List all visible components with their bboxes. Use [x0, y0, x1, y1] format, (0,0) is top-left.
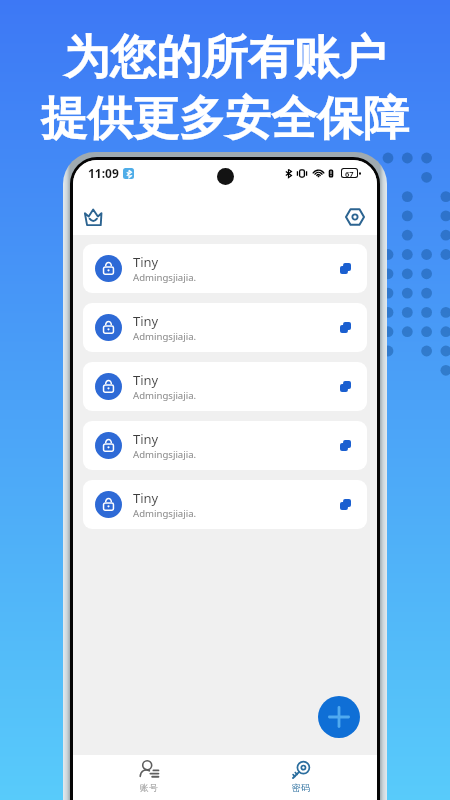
staticText: 账号 [140, 782, 158, 793]
button[interactable]: Premium [75, 199, 111, 235]
staticText: Tiny [133, 312, 159, 330]
button[interactable]: Tiny [83, 421, 367, 470]
staticText: Tiny [133, 489, 159, 507]
button[interactable]: Copy password [335, 258, 355, 278]
button[interactable]: Tiny [83, 244, 367, 293]
staticText: Tiny [133, 371, 159, 389]
button[interactable]: Copy password [335, 435, 355, 455]
staticText: 67 [345, 169, 354, 177]
staticText: Admingsjiajia. [133, 507, 197, 520]
staticText: Admingsjiajia. [133, 389, 197, 402]
button[interactable]: 账号 [73, 755, 225, 800]
button[interactable]: Tiny [83, 303, 367, 352]
staticText: Admingsjiajia. [133, 330, 197, 343]
button[interactable]: Copy password [335, 376, 355, 396]
staticText: 为您的所有账户 [64, 29, 386, 87]
button[interactable]: Copy password [335, 494, 355, 514]
staticText: Tiny [133, 253, 159, 271]
button[interactable]: 密码 [225, 755, 377, 800]
staticText: 提供更多安全保障 [41, 90, 409, 148]
button[interactable]: Add account [318, 696, 360, 738]
staticText: Admingsjiajia. [133, 271, 197, 284]
button[interactable]: Tiny [83, 362, 367, 411]
staticText: 密码 [292, 782, 310, 793]
staticText: Admingsjiajia. [133, 448, 197, 461]
button[interactable]: Tiny [83, 480, 367, 529]
button[interactable]: Settings [337, 199, 373, 235]
button[interactable]: Copy password [335, 317, 355, 337]
staticText: 11:09 [88, 165, 119, 181]
staticText: Tiny [133, 430, 159, 448]
